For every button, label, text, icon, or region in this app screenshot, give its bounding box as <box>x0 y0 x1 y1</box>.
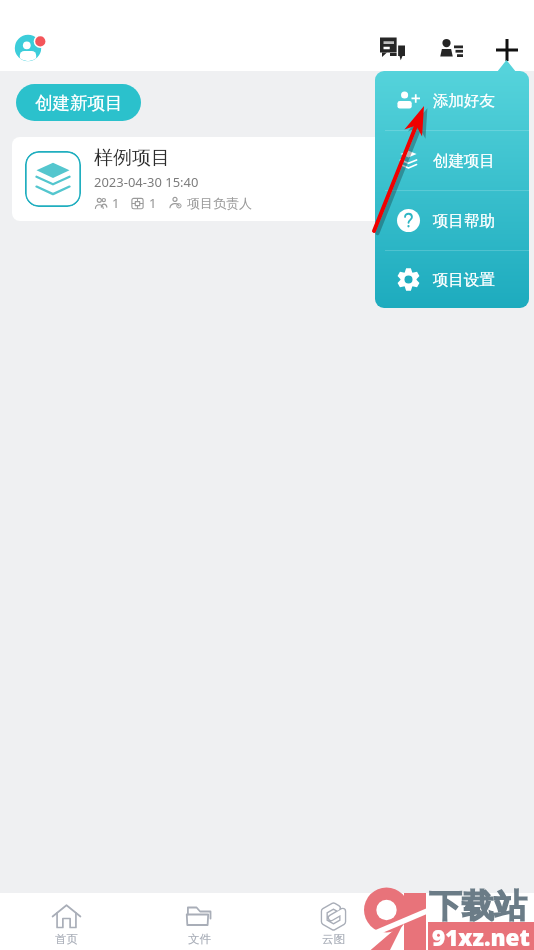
staticText: 文件 <box>188 932 211 946</box>
button[interactable]: 添加好友 <box>375 71 529 130</box>
staticText: 项目负责人 <box>187 195 252 211</box>
staticText: 1 <box>112 194 120 212</box>
staticText: 创建新项目 <box>35 92 123 114</box>
button[interactable]: 样例项目 <box>12 137 522 221</box>
button[interactable]: Profile <box>11 31 45 65</box>
staticText: 2023-04-30 15:40 <box>94 173 199 191</box>
button[interactable]: 创建项目 <box>375 131 529 190</box>
staticText: 1 <box>149 194 157 212</box>
button[interactable]: Contacts <box>432 30 468 66</box>
staticText: 添加好友 <box>433 91 495 111</box>
staticText: 91xz.net <box>432 922 530 950</box>
staticText: 项目帮助 <box>433 211 495 231</box>
button[interactable]: 首页 <box>0 897 133 946</box>
staticText: 下载站 <box>429 886 527 927</box>
button[interactable]: Messages <box>374 30 410 66</box>
button[interactable]: 文件 <box>133 897 266 946</box>
button[interactable]: 云图 <box>266 897 400 946</box>
staticText: 项目设置 <box>433 270 495 290</box>
staticText: 样例项目 <box>94 146 170 170</box>
button[interactable]: 项目设置 <box>375 251 529 308</box>
button[interactable]: 创建新项目 <box>16 84 141 121</box>
staticText: 创建项目 <box>433 151 495 171</box>
staticText: 首页 <box>55 932 78 946</box>
staticText: 云图 <box>322 932 345 946</box>
button[interactable]: Add <box>488 31 525 68</box>
button[interactable]: 项目帮助 <box>375 191 529 250</box>
